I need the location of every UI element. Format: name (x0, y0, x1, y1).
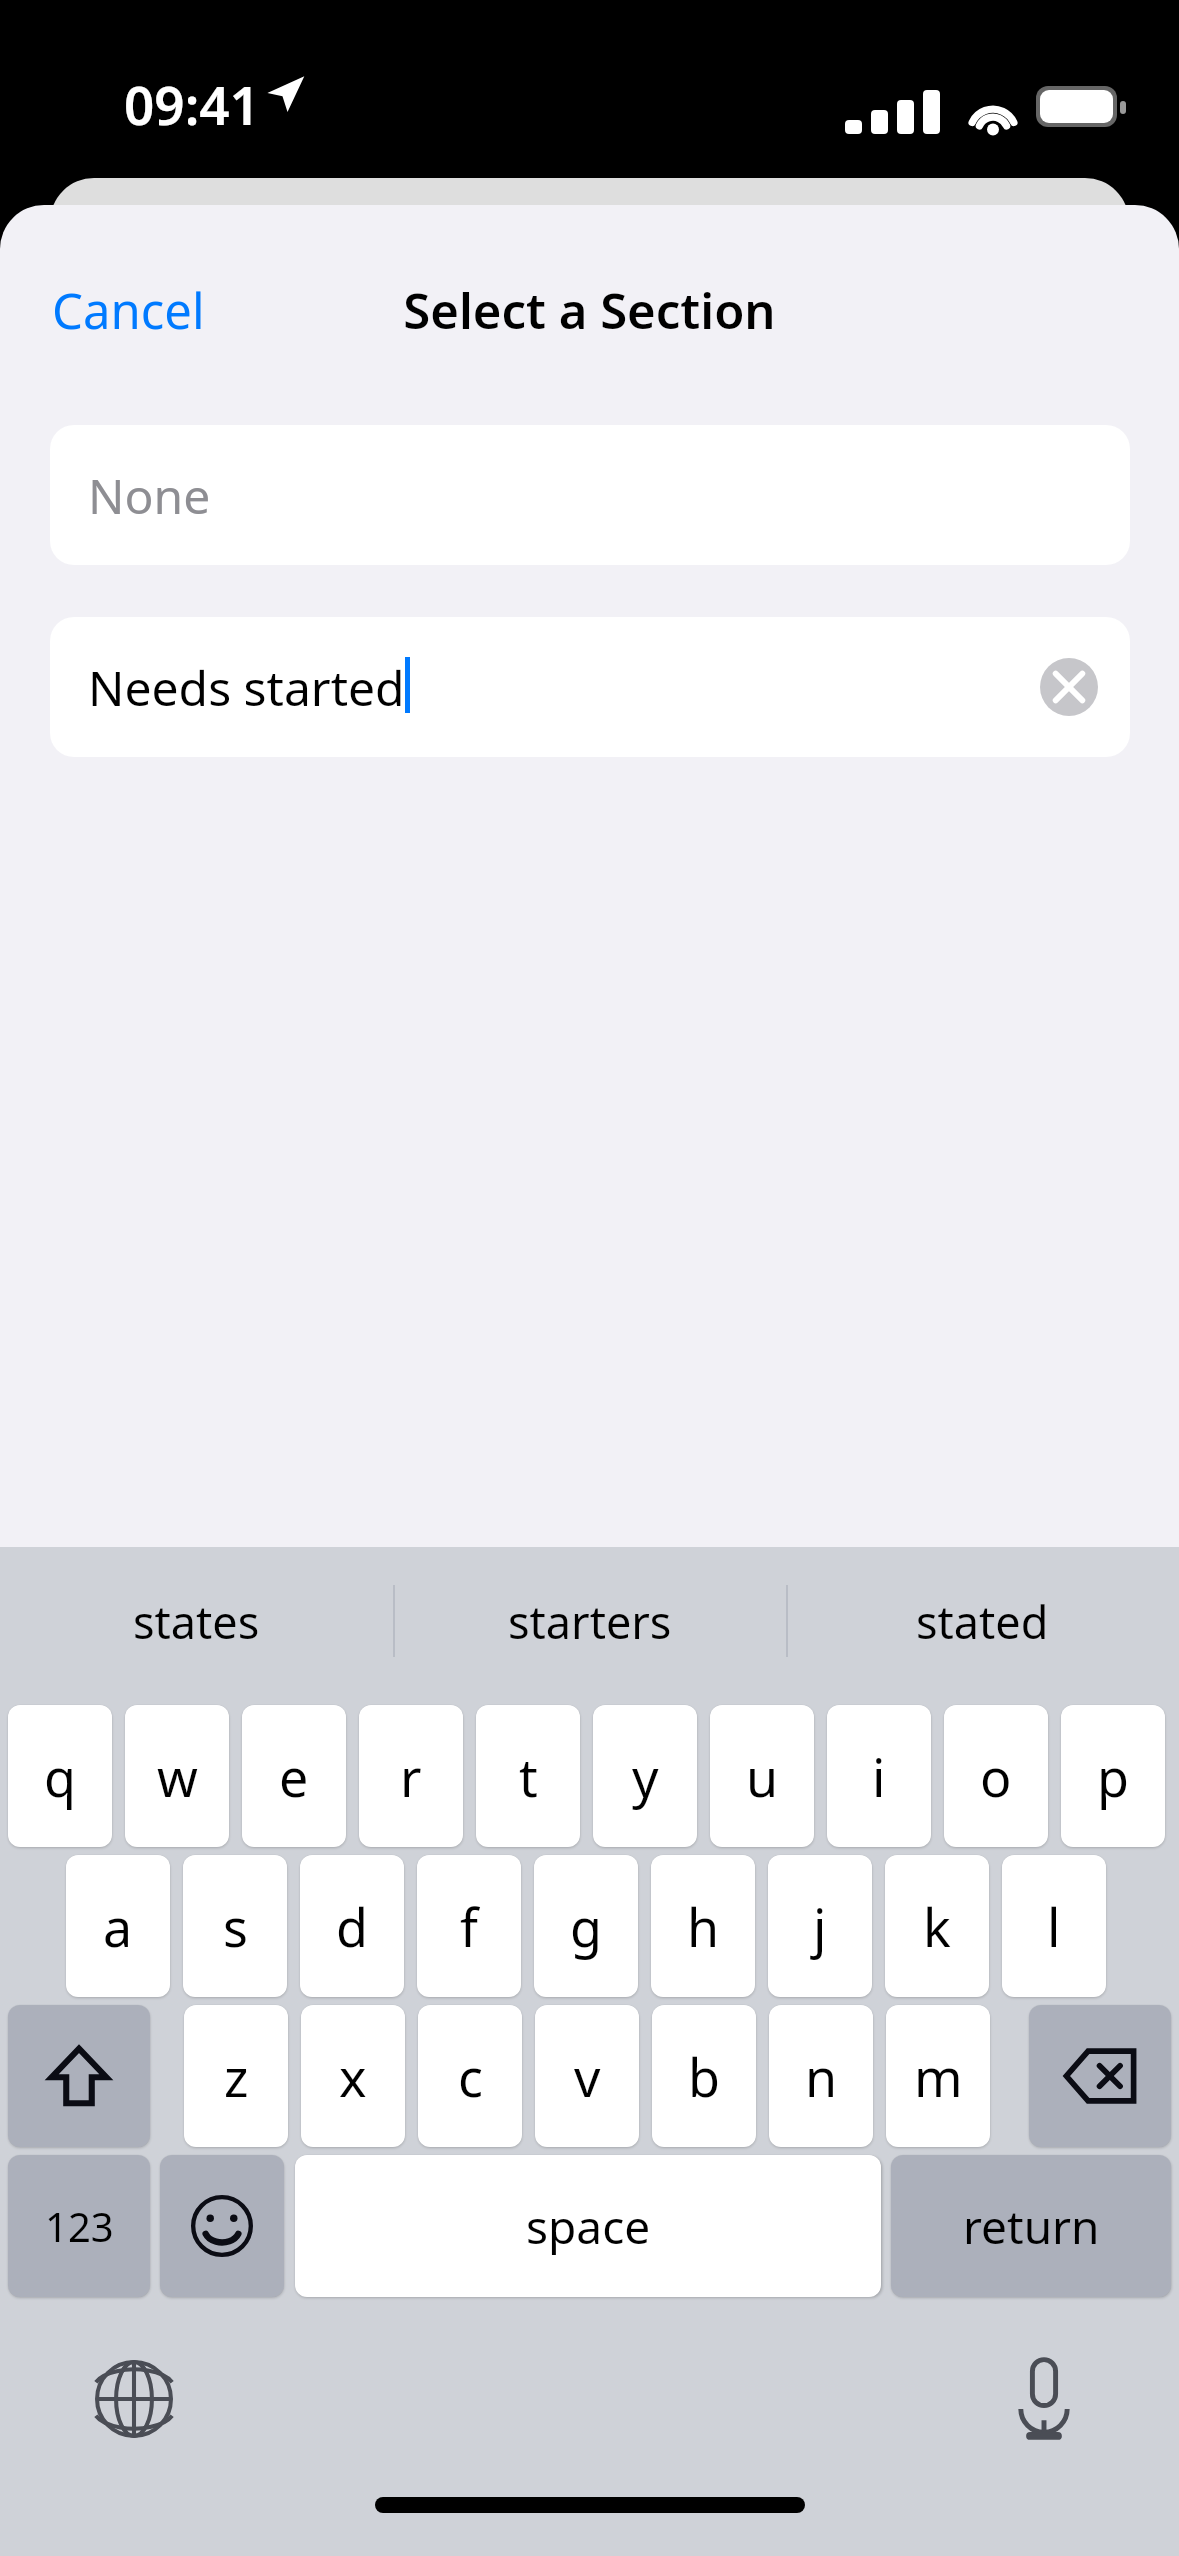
button[interactable]: return (891, 2155, 1171, 2297)
button[interactable]: k (885, 1855, 989, 1997)
other: Location active (264, 72, 306, 114)
button[interactable]: m (886, 2005, 990, 2147)
button[interactable]: Dictate (992, 2347, 1096, 2451)
staticText: m (914, 2041, 963, 2112)
button[interactable]: starters (393, 1547, 786, 1695)
button[interactable]: Shift (8, 2005, 150, 2147)
staticText: i (872, 1741, 886, 1812)
staticText: 123 (45, 2199, 114, 2253)
button[interactable]: y (593, 1705, 697, 1847)
staticText: c (458, 2041, 483, 2112)
button[interactable]: None (50, 425, 1130, 565)
staticText: q (44, 1741, 76, 1812)
button[interactable]: Emoji (160, 2155, 284, 2297)
button[interactable]: n (769, 2005, 873, 2147)
button[interactable]: f (417, 1855, 521, 1997)
button[interactable]: Delete (1029, 2005, 1171, 2147)
button[interactable]: stated (786, 1547, 1179, 1695)
button[interactable]: Switch keyboard language (82, 2347, 186, 2451)
staticText: k (923, 1891, 951, 1962)
staticText: b (688, 2041, 720, 2112)
button[interactable]: Needs started (50, 617, 1130, 757)
button[interactable]: q (8, 1705, 112, 1847)
staticText: f (460, 1891, 478, 1962)
button[interactable]: c (418, 2005, 522, 2147)
button[interactable]: g (534, 1855, 638, 1997)
staticText: u (746, 1741, 779, 1812)
staticText: w (157, 1741, 198, 1812)
button[interactable]: o (944, 1705, 1048, 1847)
button[interactable]: h (651, 1855, 755, 1997)
staticText: o (980, 1741, 1012, 1812)
staticText: z (224, 2041, 249, 2112)
staticText: n (805, 2041, 838, 2112)
button[interactable]: e (242, 1705, 346, 1847)
staticText: x (339, 2041, 367, 2112)
staticText: g (570, 1891, 602, 1962)
button[interactable]: space (295, 2155, 881, 2297)
staticText: t (519, 1741, 538, 1812)
button[interactable]: r (359, 1705, 463, 1847)
staticText: e (279, 1741, 309, 1812)
button[interactable]: z (184, 2005, 288, 2147)
staticText: space (526, 2195, 651, 2258)
button[interactable]: p (1061, 1705, 1165, 1847)
staticText: l (1047, 1891, 1061, 1962)
staticText: None (88, 463, 211, 528)
other: Wi-Fi (968, 88, 1018, 134)
button[interactable]: w (125, 1705, 229, 1847)
button[interactable]: s (183, 1855, 287, 1997)
staticText: 09:41 (124, 68, 260, 140)
button[interactable]: a (66, 1855, 170, 1997)
staticText: Select a Section (0, 277, 1179, 344)
button[interactable]: i (827, 1705, 931, 1847)
button[interactable]: Cancel (34, 267, 223, 354)
staticText: stated (916, 1591, 1049, 1652)
button[interactable]: d (300, 1855, 404, 1997)
staticText: j (813, 1891, 827, 1962)
staticText: r (400, 1741, 422, 1812)
staticText: Cancel (52, 277, 205, 344)
button[interactable]: v (535, 2005, 639, 2147)
staticText: a (103, 1891, 133, 1962)
staticText: p (1097, 1741, 1129, 1812)
button[interactable]: j (768, 1855, 872, 1997)
staticText: v (574, 2041, 601, 2112)
button[interactable]: t (476, 1705, 580, 1847)
staticText: Needs started (88, 655, 405, 720)
button[interactable]: b (652, 2005, 756, 2147)
staticText: y (632, 1741, 659, 1812)
button[interactable]: l (1002, 1855, 1106, 1997)
button[interactable]: x (301, 2005, 405, 2147)
staticText: s (223, 1891, 248, 1962)
staticText: starters (508, 1591, 672, 1652)
button[interactable]: states (0, 1547, 393, 1695)
staticText: return (963, 2195, 1100, 2258)
button[interactable]: u (710, 1705, 814, 1847)
staticText: states (133, 1591, 260, 1652)
button[interactable]: Clear text (1034, 652, 1104, 722)
staticText: d (336, 1891, 368, 1962)
button[interactable]: 123 (8, 2155, 150, 2297)
staticText: h (687, 1891, 720, 1962)
